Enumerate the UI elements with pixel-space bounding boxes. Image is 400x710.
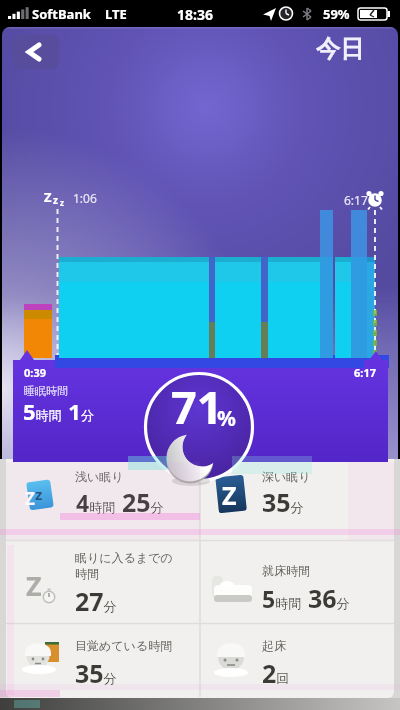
- staticText: 睡眠時間: [24, 384, 68, 398]
- staticText: z: [60, 197, 64, 208]
- staticText: 目覚めている時間: [75, 638, 173, 653]
- staticText: SoftBank: [32, 5, 91, 23]
- button[interactable]: [12, 35, 59, 69]
- staticText: Z: [222, 478, 237, 512]
- button[interactable]: [6, 541, 200, 623]
- staticText: 6:17: [344, 192, 368, 208]
- staticText: 2回: [262, 656, 290, 690]
- staticText: 深い眠り: [262, 469, 311, 484]
- button[interactable]: [200, 462, 394, 540]
- staticText: 4時間 25分: [76, 485, 164, 519]
- button[interactable]: [6, 624, 200, 697]
- staticText: 起床: [262, 638, 286, 653]
- staticText: 眠りに入るまでの: [75, 550, 173, 565]
- staticText: 今日: [316, 34, 364, 64]
- staticText: 5時間 1分: [23, 396, 94, 426]
- button[interactable]: [200, 624, 394, 697]
- staticText: 6:17: [354, 365, 376, 380]
- staticText: 就床時間: [262, 563, 310, 578]
- staticText: %: [217, 404, 236, 433]
- staticText: Z: [44, 188, 52, 206]
- staticText: LTE: [105, 5, 127, 23]
- staticText: 5時間 36分: [262, 581, 350, 615]
- staticText: z: [53, 193, 58, 207]
- staticText: 71: [171, 376, 223, 437]
- staticText: 1:06: [73, 190, 97, 206]
- staticText: 35分: [262, 485, 304, 519]
- staticText: 浅い眠り: [75, 469, 124, 484]
- button[interactable]: [6, 462, 200, 540]
- staticText: 0:39: [24, 365, 46, 380]
- staticText: 18:36: [177, 5, 213, 24]
- staticText: 時間: [75, 566, 99, 581]
- button[interactable]: [200, 541, 394, 623]
- staticText: Z: [26, 567, 42, 604]
- staticText: Z: [25, 487, 35, 510]
- staticText: 59%: [323, 5, 350, 23]
- staticText: z: [35, 484, 43, 504]
- staticText: 27分: [75, 584, 117, 618]
- staticText: 35分: [75, 656, 117, 690]
